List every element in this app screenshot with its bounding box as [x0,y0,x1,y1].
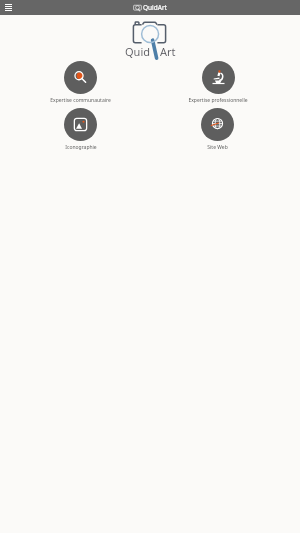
staticText: Expertise communautaire [50,97,111,104]
staticText: Art [160,44,176,59]
staticText: Site Web [207,144,228,151]
staticText: QuidArt [143,3,167,12]
button[interactable]: Site Web [171,108,264,151]
button[interactable]: Menu [3,2,14,13]
button[interactable]: Expertise communautaire [34,61,127,104]
staticText: Quid [125,44,150,59]
button[interactable]: Iconographie [34,108,127,151]
staticText: Iconographie [65,144,97,151]
staticText: Expertise professionnelle [188,97,248,104]
button[interactable]: Expertise professionnelle [171,61,264,104]
